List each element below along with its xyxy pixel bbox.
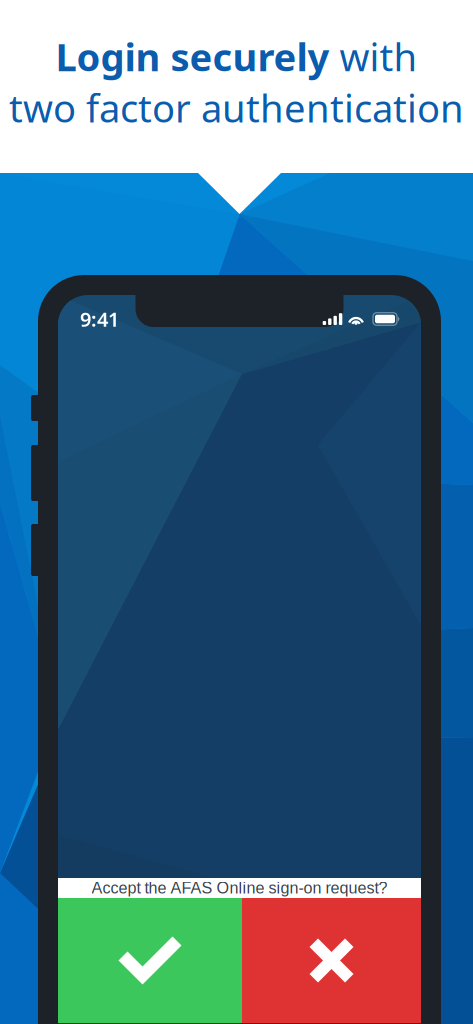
staticText: two factor authentication <box>9 82 464 134</box>
staticText: 9:41 <box>80 306 119 332</box>
button[interactable]: Accept sign-on request <box>58 898 242 1023</box>
staticText: Login securely with <box>55 31 417 82</box>
button[interactable]: Decline sign-on request <box>242 898 421 1023</box>
staticText: Accept the AFAS Online sign-on request? <box>91 879 387 897</box>
